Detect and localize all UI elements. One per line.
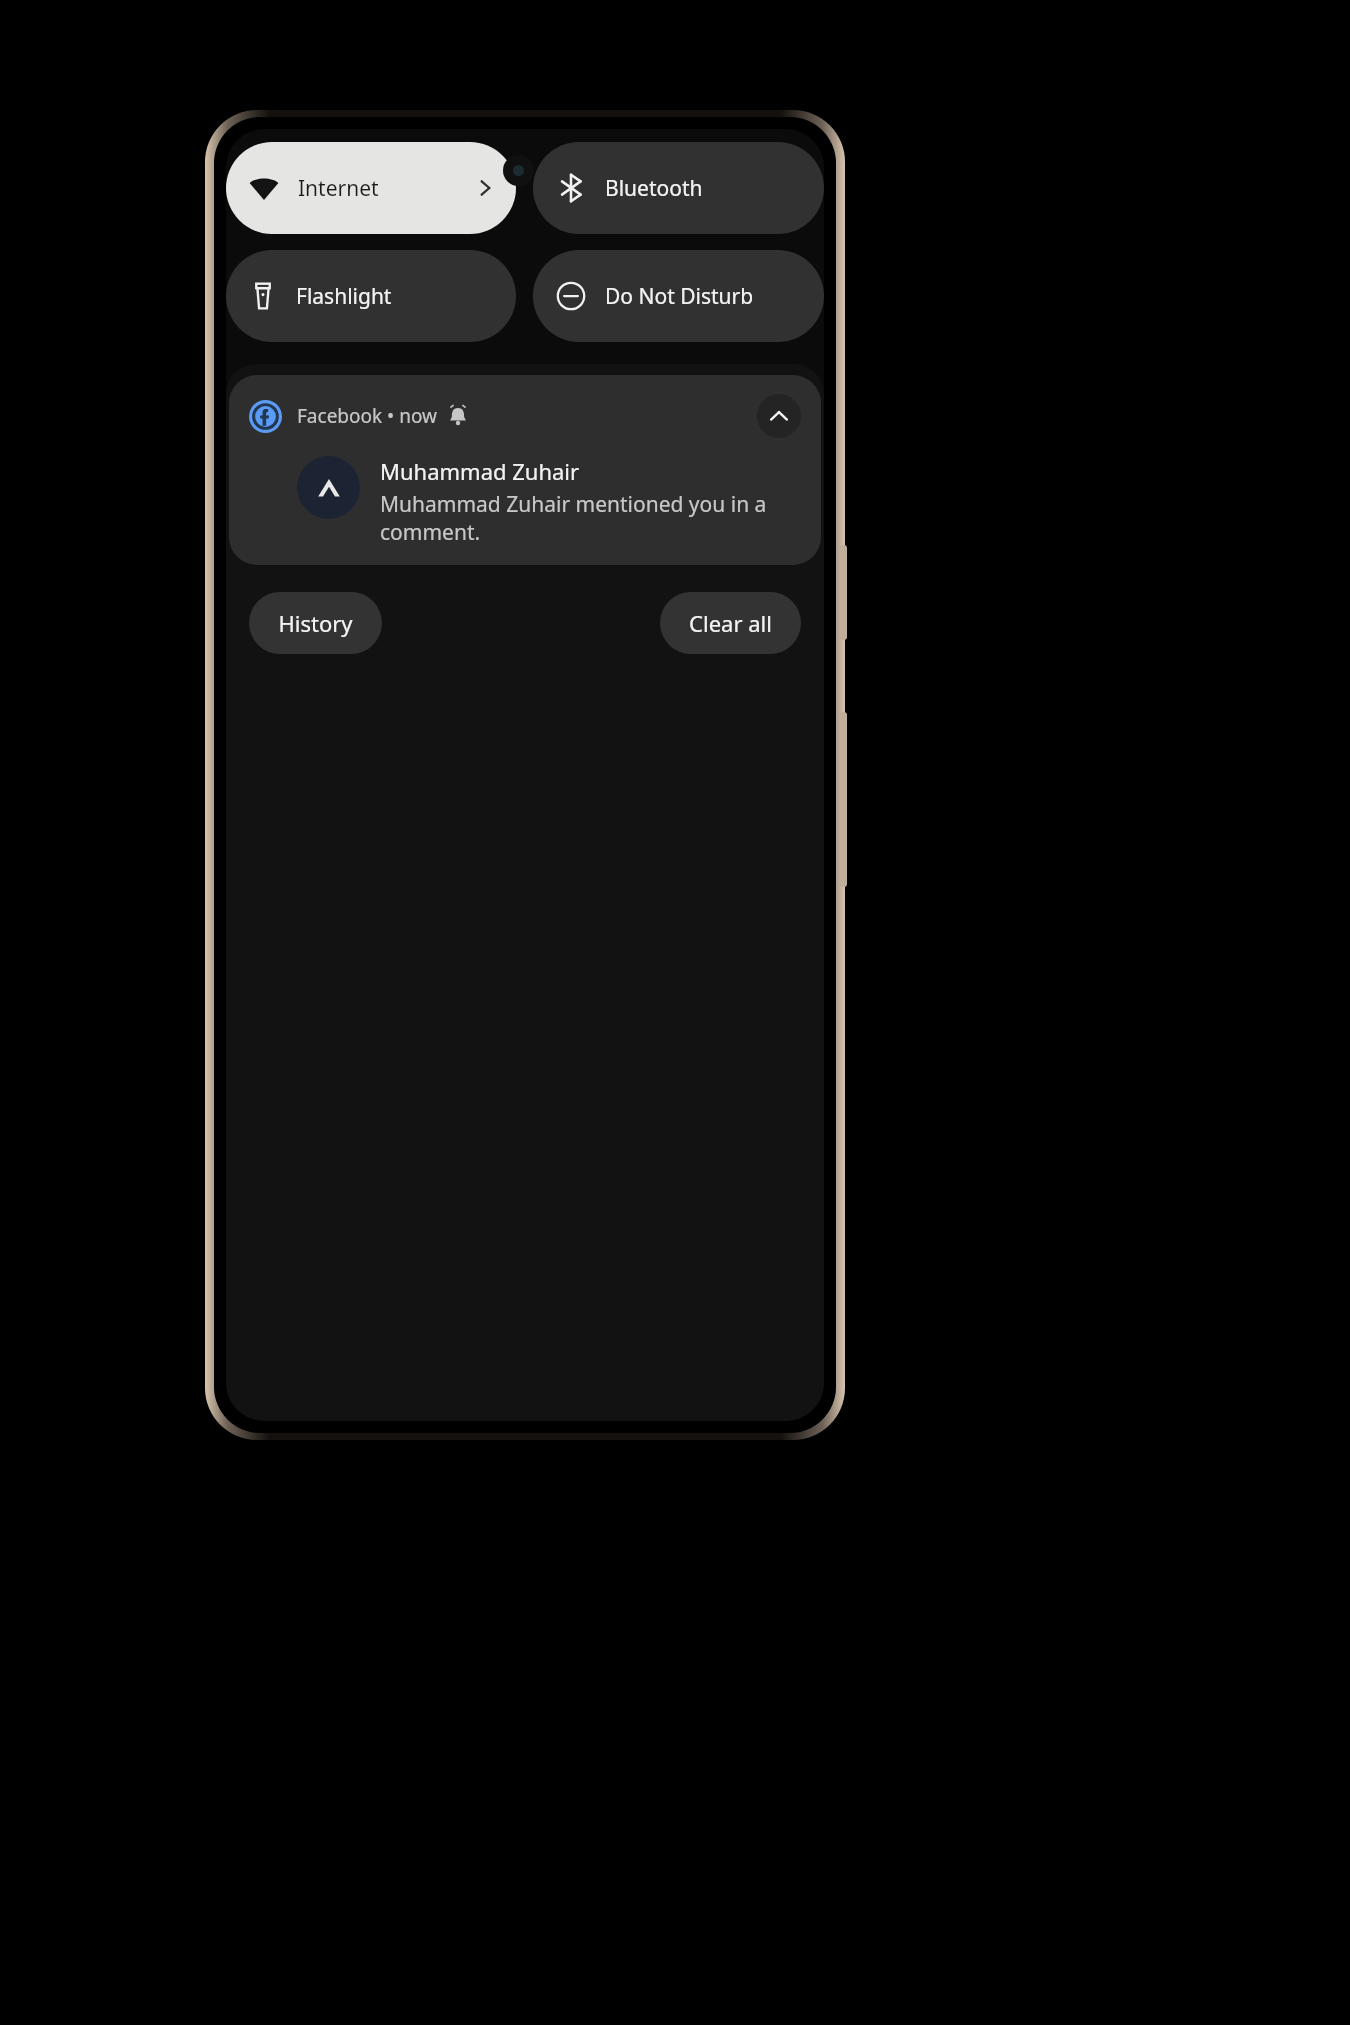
staticText: History (278, 608, 353, 638)
staticText: Internet (298, 174, 379, 203)
button[interactable]: Collapse notification (757, 394, 801, 438)
staticText: Muhammad Zuhair (380, 456, 580, 486)
staticText: Clear all (689, 608, 772, 638)
button[interactable]: Bluetooth (533, 142, 824, 234)
button[interactable]: Facebook • now (229, 375, 821, 565)
staticText: Bluetooth (605, 174, 703, 203)
staticText: Flashlight (296, 282, 392, 311)
other: Power (840, 712, 847, 887)
staticText: Muhammad Zuhair mentioned you in a comme… (380, 490, 801, 546)
staticText: Facebook • now (297, 403, 437, 429)
button[interactable]: Clear all (660, 592, 801, 654)
button[interactable]: Flashlight (226, 250, 516, 342)
button[interactable]: Do Not Disturb (533, 250, 824, 342)
button[interactable]: Internet (226, 142, 516, 234)
button[interactable]: History (249, 592, 382, 654)
staticText: Do Not Disturb (605, 282, 754, 311)
other: Volume (840, 545, 847, 640)
